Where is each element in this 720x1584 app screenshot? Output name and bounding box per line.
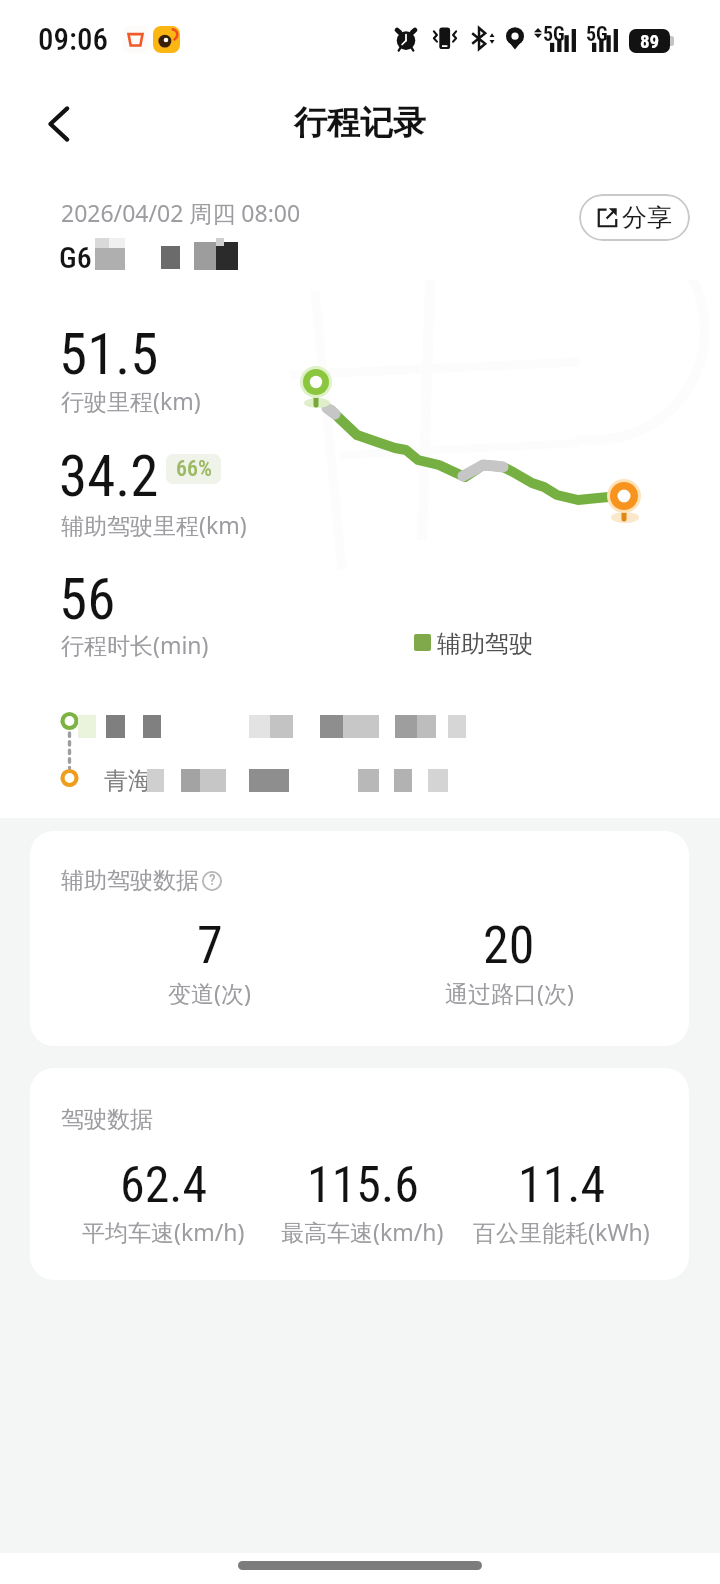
staticText: 20: [483, 915, 535, 976]
staticText: 11.4: [518, 1156, 606, 1215]
staticText: 62.4: [120, 1156, 208, 1215]
staticText: 辅助驾驶: [437, 629, 533, 659]
staticText: 辅助驾驶里程(km): [61, 509, 247, 540]
staticText: 百公里能耗(kWh): [473, 1216, 650, 1247]
staticText: 青海: [104, 766, 152, 796]
staticText: 行程记录: [0, 102, 720, 144]
staticText: 最高车速(km/h): [281, 1216, 444, 1247]
button[interactable]: Back: [30, 94, 90, 154]
staticText: 通过路口(次): [445, 977, 574, 1008]
staticText: 66%: [176, 456, 212, 482]
staticText: G6: [59, 240, 92, 275]
staticText: 行程时长(min): [61, 629, 209, 660]
button[interactable]: 辅助驾驶数据: [30, 831, 689, 1046]
staticText: 变道(次): [168, 977, 251, 1008]
staticText: 7: [197, 915, 223, 976]
staticText: 5G: [543, 22, 565, 45]
staticText: 115.6: [307, 1156, 419, 1215]
staticText: 辅助驾驶数据: [61, 866, 199, 895]
staticText: 行驶里程(km): [61, 385, 201, 416]
button[interactable]: 驾驶数据: [30, 1068, 689, 1280]
staticText: 51.5: [59, 321, 159, 388]
staticText: 分享: [622, 202, 672, 233]
staticText: 34.2: [59, 443, 159, 510]
staticText: 09:06: [38, 21, 108, 57]
staticText: 平均车速(km/h): [82, 1216, 245, 1247]
staticText: 89: [640, 30, 660, 52]
staticText: ?: [209, 871, 216, 889]
staticText: 5G: [586, 22, 608, 45]
staticText: 2026/04/02 周四 08:00: [61, 197, 301, 228]
other: Help: [202, 871, 222, 891]
staticText: 56: [59, 566, 116, 633]
staticText: 驾驶数据: [61, 1105, 153, 1134]
button[interactable]: 分享: [579, 194, 690, 241]
